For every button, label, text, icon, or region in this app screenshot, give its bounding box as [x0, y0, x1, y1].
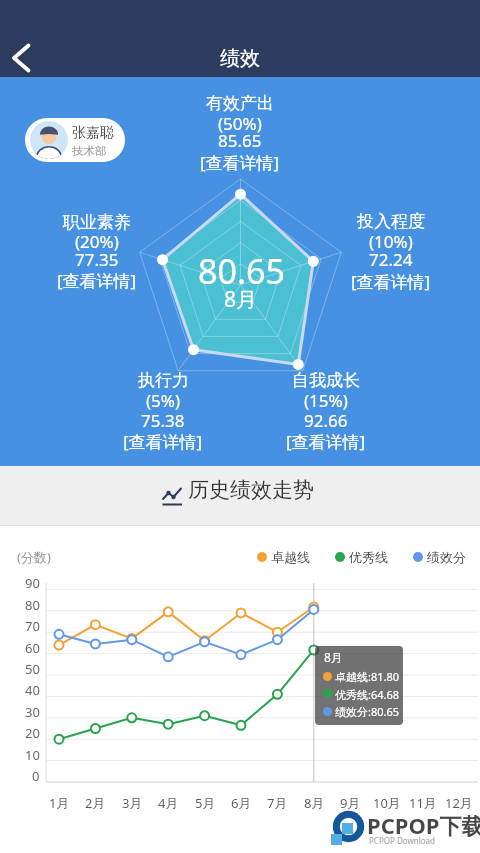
staticText: [查看详情] [286, 430, 366, 453]
staticText: [查看详情] [200, 151, 280, 174]
button[interactable] [408, 546, 474, 568]
staticText: (5%) [146, 389, 181, 412]
staticText: 技术部 [72, 144, 107, 158]
staticText: 0 [32, 767, 40, 785]
button[interactable]: [查看详情] [321, 264, 461, 298]
staticText: [查看详情] [123, 430, 203, 453]
staticText: [查看详情] [57, 269, 137, 292]
staticText: 30 [25, 703, 40, 721]
button[interactable]: [查看详情] [27, 263, 167, 297]
staticText: 绩效分:80.65 [335, 704, 400, 719]
staticText: 8月 [324, 649, 343, 665]
staticText: 卓越线:81.80 [335, 669, 400, 684]
staticText: 40 [25, 681, 40, 699]
staticText: 92.66 [304, 409, 348, 432]
staticText: (10%) [369, 230, 413, 253]
staticText: 80.65 [198, 248, 285, 294]
button[interactable]: 历史绩效走势 [160, 480, 340, 512]
staticText: 90 [25, 574, 40, 592]
staticText: 80 [25, 596, 40, 614]
button[interactable]: [查看详情] [256, 424, 396, 458]
staticText: 60 [25, 639, 40, 657]
staticText: 7月 [267, 794, 288, 812]
staticText: 投入程度 [357, 211, 425, 232]
staticText: 5月 [195, 794, 216, 812]
staticText: 张嘉聪 [72, 124, 114, 142]
button[interactable] [0, 30, 52, 77]
button[interactable] [330, 546, 396, 568]
staticText: 8月 [224, 285, 258, 314]
button[interactable]: [查看详情] [170, 145, 310, 179]
staticText: 8月 [304, 794, 325, 812]
staticText: 优秀线:64.68 [335, 687, 400, 702]
staticText: 绩效分 [427, 549, 466, 565]
staticText: (20%) [75, 230, 119, 253]
staticText: 绩效 [220, 46, 260, 71]
staticText: (50%) [218, 112, 262, 135]
staticText: 优秀线 [349, 549, 388, 565]
staticText: PCPOP Download [369, 835, 435, 846]
button[interactable] [252, 546, 318, 568]
staticText: 卓越线 [271, 549, 310, 565]
staticText: 12月 [445, 794, 473, 812]
staticText: 历史绩效走势 [188, 477, 314, 503]
staticText: 职业素养 [63, 212, 131, 233]
staticText: 11月 [409, 794, 437, 812]
staticText: PCPOP下载 [367, 810, 480, 840]
staticText: 70 [25, 617, 40, 635]
staticText: 1月 [49, 794, 70, 812]
staticText: 自我成长 [292, 370, 360, 391]
staticText: (分数) [17, 548, 51, 566]
staticText: 6月 [231, 794, 252, 812]
staticText: 4月 [158, 794, 179, 812]
staticText: 10 [25, 746, 40, 764]
staticText: 75.38 [141, 409, 185, 432]
staticText: 20 [25, 724, 40, 742]
staticText: 2月 [85, 794, 106, 812]
staticText: 72.24 [369, 248, 413, 271]
staticText: (15%) [304, 389, 348, 412]
staticText: [查看详情] [351, 270, 431, 293]
button[interactable]: 张嘉聪 [25, 118, 125, 162]
staticText: 9月 [340, 794, 361, 812]
staticText: 执行力 [138, 370, 189, 391]
button[interactable]: [查看详情] [93, 424, 233, 458]
staticText: 50 [25, 660, 40, 678]
staticText: 10月 [373, 794, 401, 812]
staticText: 3月 [122, 794, 143, 812]
staticText: 85.65 [218, 129, 262, 152]
staticText: 有效产出 [206, 93, 274, 114]
staticText: 77.35 [75, 248, 119, 271]
